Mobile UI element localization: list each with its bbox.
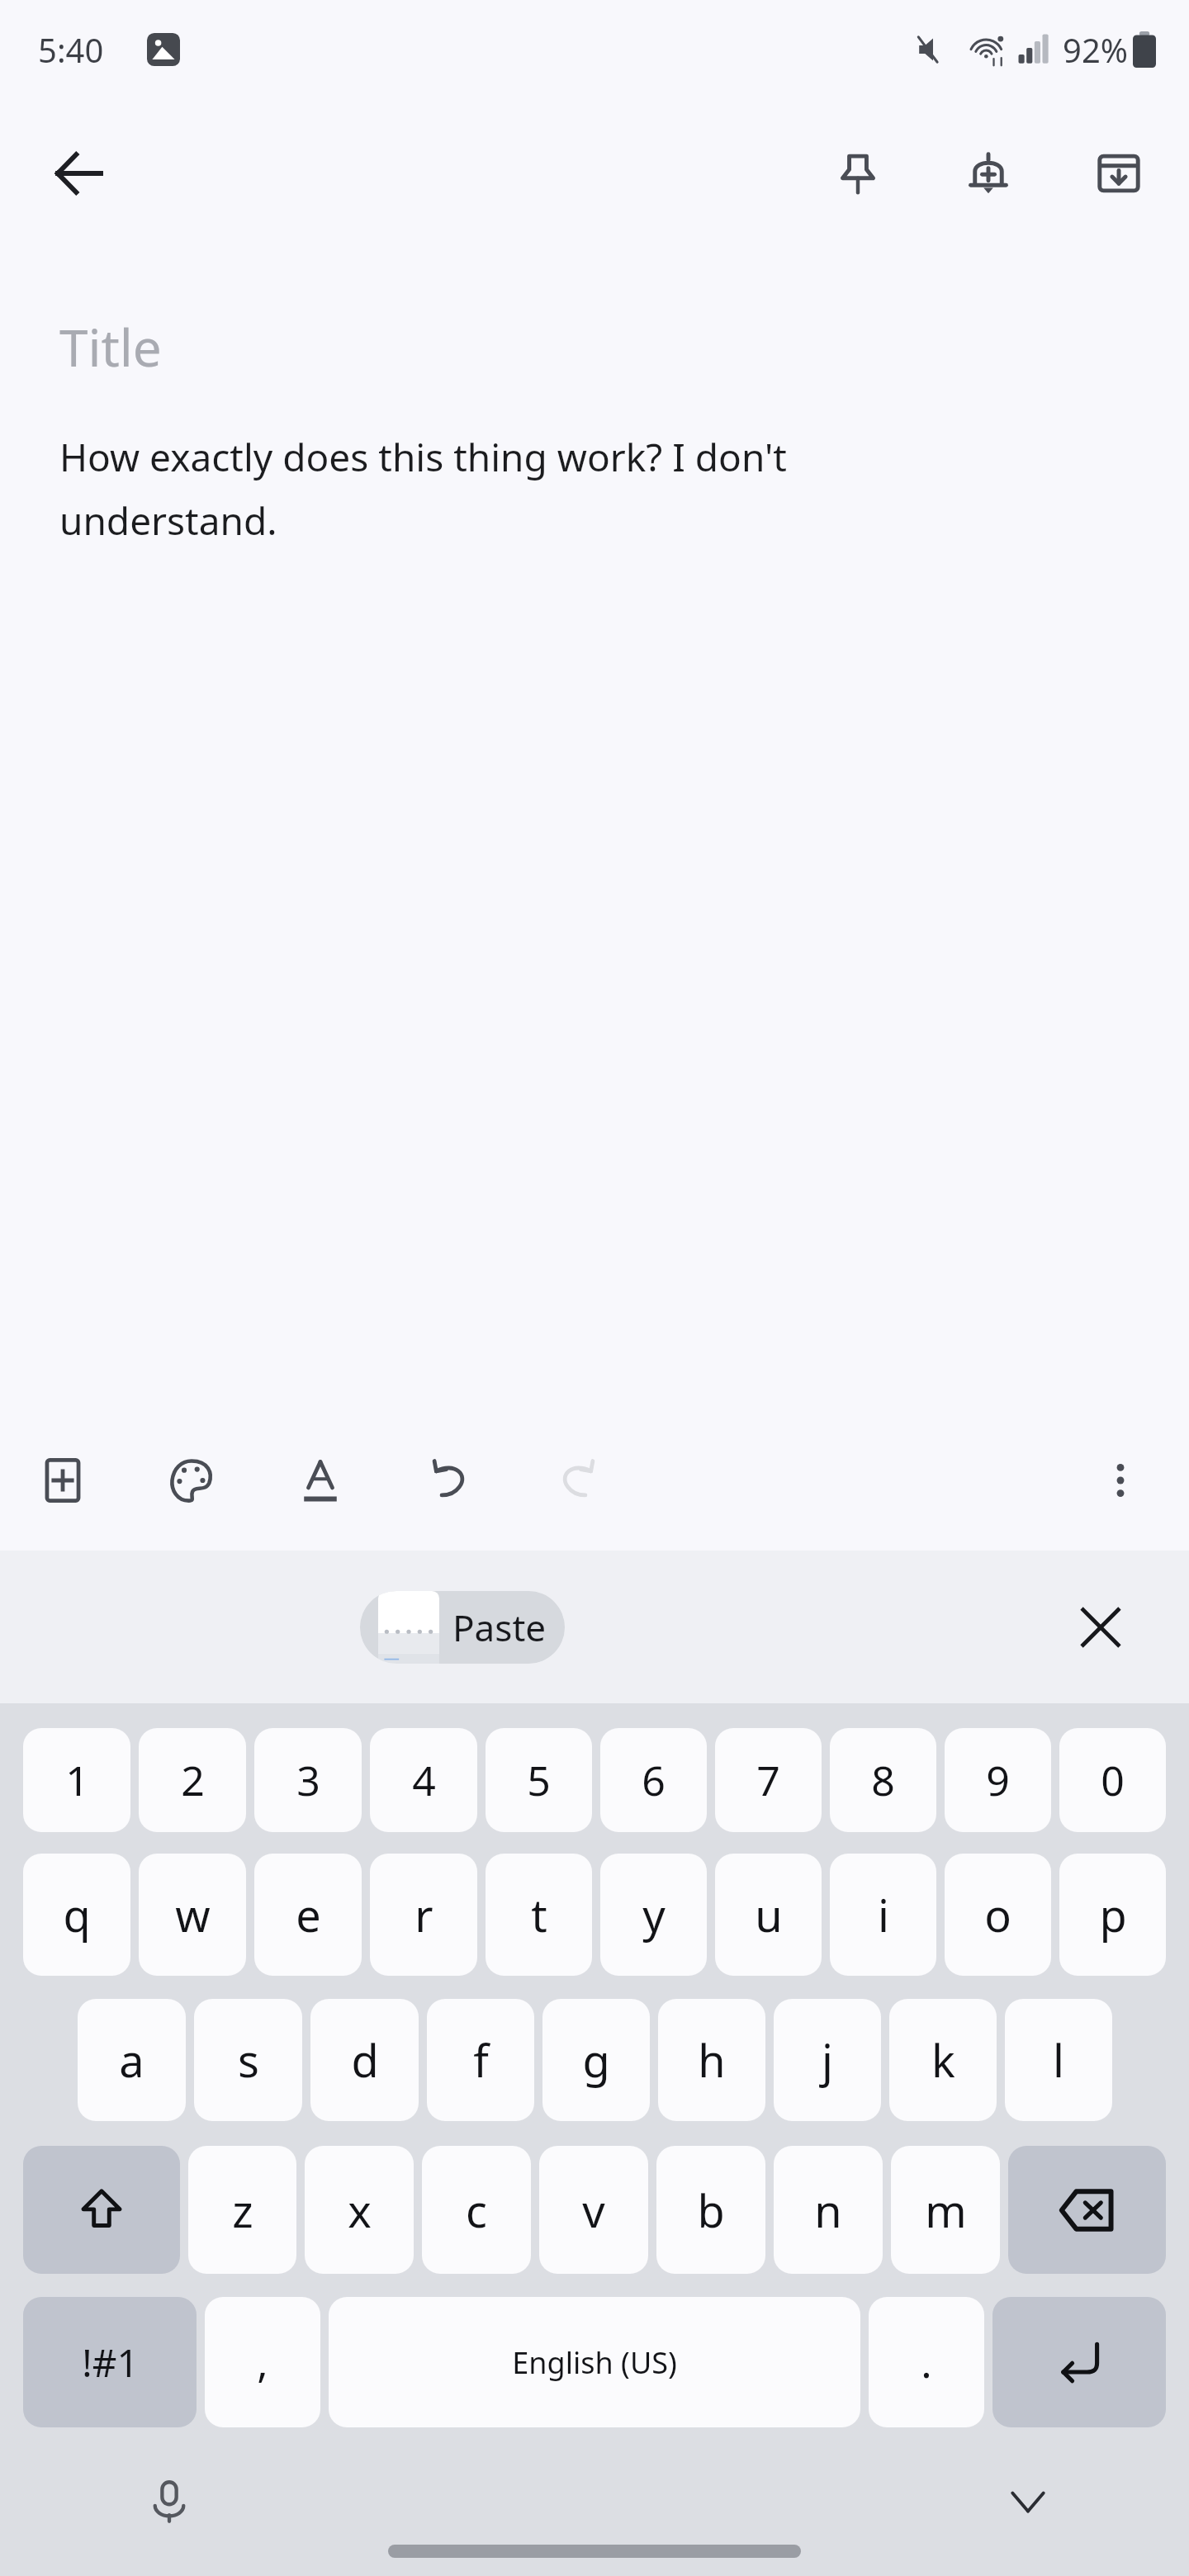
staticText: , [257,2334,268,2390]
button[interactable]: f [427,1999,534,2121]
staticText: 4 [412,1752,436,1808]
staticText: n [814,2180,842,2241]
button[interactable]: j [774,1999,881,2121]
staticText: m [925,2180,967,2241]
button[interactable]: q [23,1854,130,1976]
staticText: English (US) [512,2342,677,2383]
button[interactable]: , [205,2297,320,2427]
button[interactable]: 8 [830,1728,936,1832]
button[interactable]: y [600,1854,707,1976]
staticText: q [63,1884,91,1945]
button[interactable]: Text formatting [277,1437,363,1523]
button[interactable]: d [310,1999,419,2121]
button[interactable]: r [370,1854,477,1976]
staticText: 5:40 [38,27,104,72]
staticText: 1 [65,1752,89,1808]
staticText: r [414,1884,433,1945]
button[interactable]: 9 [945,1728,1051,1832]
button[interactable]: e [254,1854,362,1976]
button[interactable]: Archive [1073,128,1164,219]
button[interactable]: t [486,1854,592,1976]
button[interactable]: Redo [535,1437,621,1523]
button[interactable]: m [891,2146,1000,2274]
button[interactable]: l [1005,1999,1112,2121]
button[interactable]: How exactly does this thing work? I don'… [59,431,1130,546]
button[interactable]: enter [992,2297,1166,2427]
button[interactable]: Hide keyboard [983,2456,1073,2547]
button[interactable]: Back [30,124,129,223]
button[interactable]: o [945,1854,1051,1976]
staticText: e [296,1884,321,1945]
button[interactable]: v [539,2146,648,2274]
button[interactable]: 4 [370,1728,477,1832]
button[interactable]: s [194,1999,302,2121]
button[interactable]: Title [59,312,1130,381]
staticText: . [921,2334,932,2390]
staticText: y [642,1884,666,1945]
staticText: w [175,1884,211,1945]
button[interactable]: 0 [1059,1728,1166,1832]
button[interactable]: c [422,2146,531,2274]
button[interactable]: . [869,2297,984,2427]
staticText: b [697,2180,725,2241]
staticText: g [582,2029,610,2091]
staticText: u [755,1884,783,1945]
button[interactable]: backspace [1008,2146,1166,2274]
staticText: z [232,2180,253,2241]
button[interactable]: p [1059,1854,1166,1976]
staticText: i [878,1884,889,1945]
button[interactable]: Change color [149,1437,234,1523]
staticText: j [822,2029,833,2091]
button[interactable]: !#1 [23,2297,197,2427]
button[interactable]: 6 [600,1728,707,1832]
button[interactable]: Voice input [124,2456,215,2547]
button[interactable]: Paste [360,1591,565,1664]
staticText: 92% [1063,27,1128,72]
staticText: c [466,2180,487,2241]
staticText: l [1053,2029,1064,2091]
staticText: 9 [986,1752,1010,1808]
button[interactable]: g [542,1999,650,2121]
button[interactable]: Add attachment [20,1437,106,1523]
staticText: s [238,2029,259,2091]
button[interactable]: Close suggestion [1055,1582,1146,1673]
staticText: How exactly does this thing work? I don'… [59,431,787,546]
button[interactable]: a [78,1999,186,2121]
button[interactable]: 3 [254,1728,362,1832]
staticText: v [582,2180,605,2241]
staticText: t [531,1884,547,1945]
button[interactable]: u [715,1854,822,1976]
staticText: d [351,2029,379,2091]
button[interactable]: Add reminder [943,128,1034,219]
button[interactable]: More options [1075,1435,1166,1526]
button[interactable]: z [188,2146,296,2274]
staticText: Paste [452,1603,547,1652]
staticText: Title [59,312,162,381]
button[interactable]: h [658,1999,765,2121]
staticText: 2 [181,1752,205,1808]
staticText: 3 [296,1752,320,1808]
staticText: x [348,2180,372,2241]
staticText: h [698,2029,726,2091]
button[interactable]: shift [23,2146,180,2274]
button[interactable]: 1 [23,1728,130,1832]
button[interactable]: Undo [406,1437,492,1523]
staticText: p [1099,1884,1127,1945]
button[interactable]: i [830,1854,936,1976]
staticText: 7 [756,1752,780,1808]
staticText: o [984,1884,1011,1945]
button[interactable]: 5 [486,1728,592,1832]
staticText: f [473,2029,489,2091]
button[interactable]: Pin note [812,128,903,219]
button[interactable]: n [774,2146,883,2274]
button[interactable]: 2 [139,1728,246,1832]
button[interactable]: English (US) [329,2297,860,2427]
button[interactable]: x [305,2146,414,2274]
button[interactable]: b [656,2146,765,2274]
staticText: k [931,2029,955,2091]
staticText: 8 [871,1752,895,1808]
button[interactable]: 7 [715,1728,822,1832]
button[interactable]: k [889,1999,997,2121]
button[interactable]: w [139,1854,246,1976]
staticText: a [119,2029,144,2091]
